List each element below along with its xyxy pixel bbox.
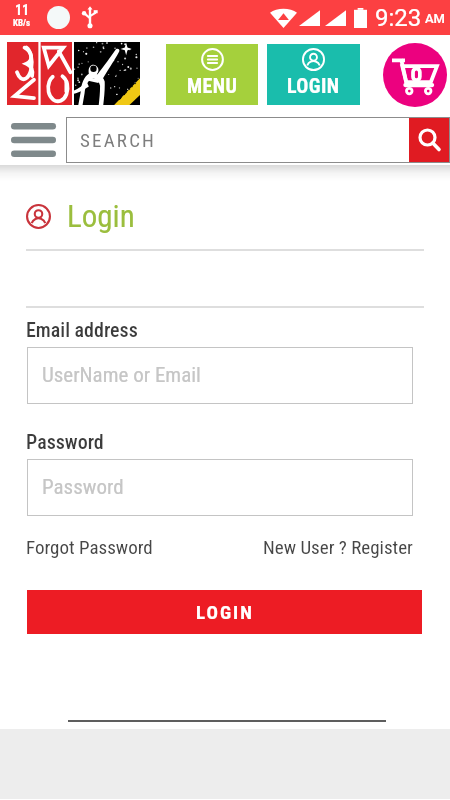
staticText: LOGIN: [196, 601, 254, 623]
staticText: BETA: [112, 76, 139, 103]
button[interactable]: Password: [27, 459, 413, 516]
button[interactable]: MENU: [166, 44, 258, 105]
button[interactable]: Beta: [74, 42, 140, 105]
button[interactable]: LOGIN: [27, 590, 422, 634]
staticText: Email address: [26, 318, 138, 341]
staticText: New User ? Register: [263, 536, 413, 558]
button[interactable]: Navigation menu: [4, 111, 62, 168]
button[interactable]: SEARCH: [66, 117, 409, 163]
staticText: 9:23: [375, 4, 422, 32]
staticText: AM: [425, 11, 445, 26]
button[interactable]: Cart: [383, 43, 447, 107]
staticText: Password: [26, 430, 104, 453]
staticText: LOGIN: [287, 74, 340, 97]
staticText: UserName or Email: [42, 363, 201, 388]
button[interactable]: Home: [7, 42, 72, 105]
staticText: Password: [42, 475, 124, 500]
button[interactable]: UserName or Email: [27, 347, 413, 404]
staticText: Forgot Password: [26, 536, 153, 558]
button[interactable]: LOGIN: [267, 44, 360, 105]
button[interactable]: Forgot Password: [26, 536, 153, 558]
staticText: Login: [67, 198, 135, 234]
staticText: MENU: [187, 74, 238, 97]
staticText: 11: [15, 2, 30, 18]
staticText: KB/s: [13, 18, 31, 29]
staticText: SEARCH: [80, 129, 157, 151]
button[interactable]: Search: [409, 117, 450, 163]
button[interactable]: New User ? Register: [263, 536, 413, 558]
